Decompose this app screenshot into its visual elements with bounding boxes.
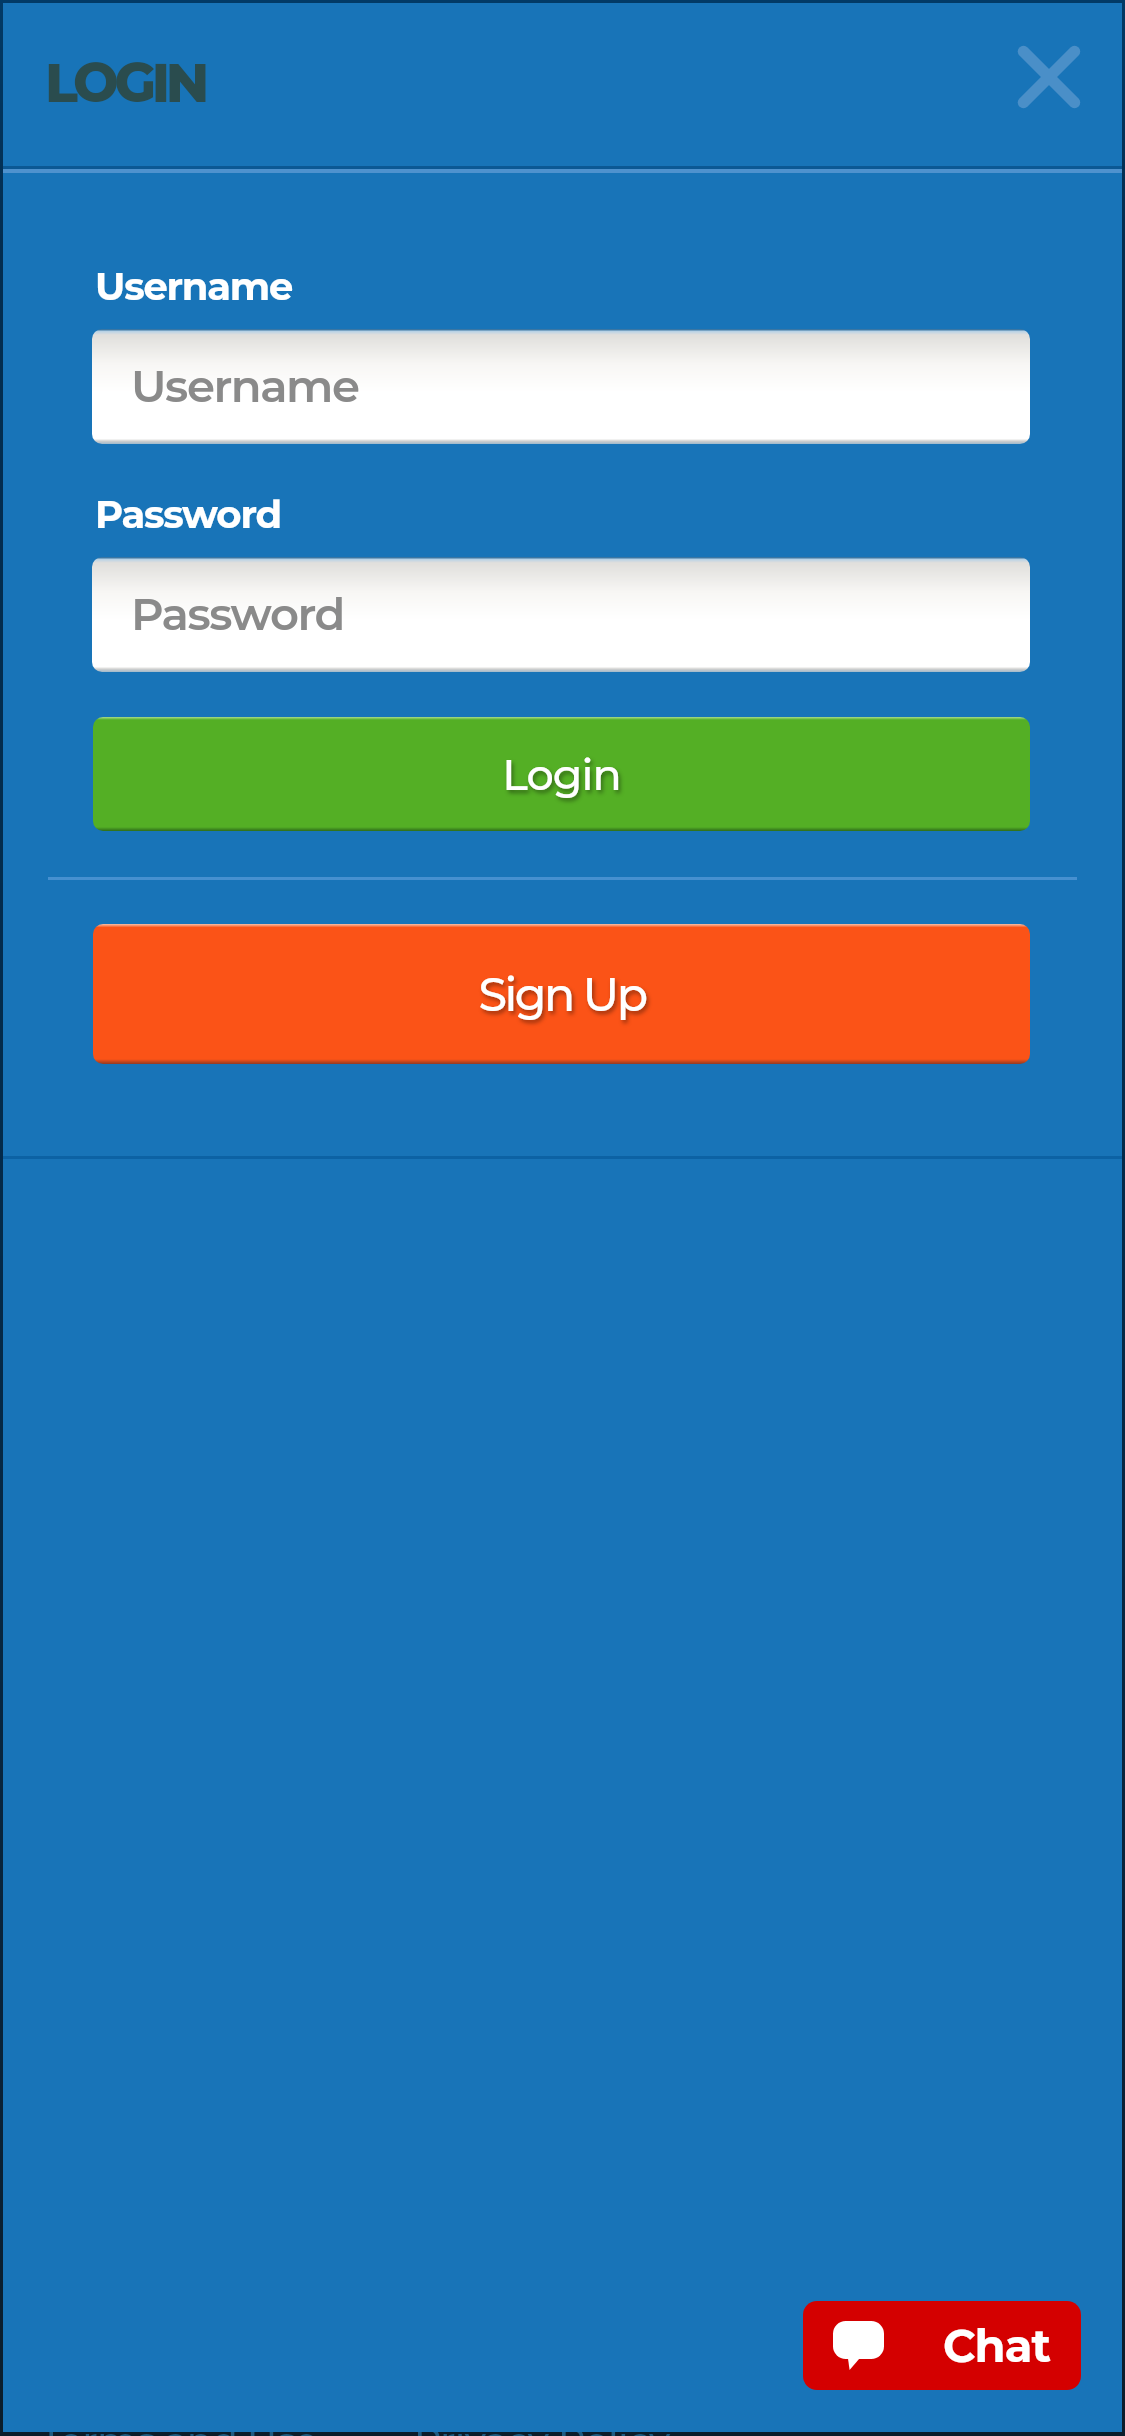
button[interactable]: Sign Up <box>93 924 1030 1064</box>
staticText: Password <box>95 491 281 538</box>
button[interactable]: Username <box>92 329 1030 444</box>
button[interactable]: Privacy Policy <box>414 2417 670 2436</box>
staticText: Username <box>95 263 293 310</box>
staticText: Sign Up <box>478 966 646 1022</box>
button[interactable]: Close <box>999 27 1099 127</box>
staticText: LOGIN <box>45 50 205 116</box>
button[interactable]: Terms and Use <box>40 2417 318 2436</box>
button[interactable]: Password <box>92 557 1030 672</box>
staticText: Username <box>131 358 359 413</box>
staticText: Login <box>502 748 621 800</box>
button[interactable]: Login <box>93 717 1030 831</box>
button[interactable]: Chat <box>803 2301 1081 2390</box>
staticText: Chat <box>943 2318 1051 2373</box>
staticText: Password <box>131 586 345 641</box>
